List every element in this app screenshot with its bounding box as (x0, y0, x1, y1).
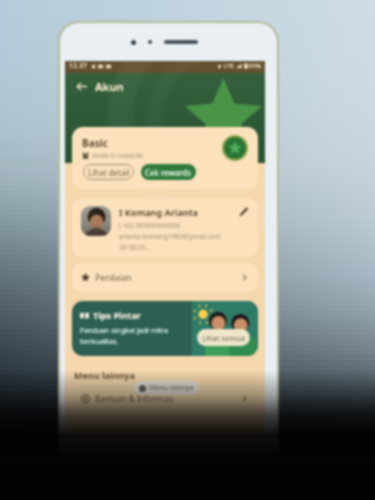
button[interactable]: Basic (72, 127, 258, 189)
staticText: Panduan singkat jadi mitra berkualitas. (80, 326, 169, 346)
staticText: I Komang Arianta (119, 206, 198, 218)
staticText: Lihat detail (88, 167, 130, 178)
button[interactable]: Bantuan & Informasi (72, 385, 258, 411)
staticText: Penilaian (95, 272, 132, 284)
button[interactable]: Tips Pintar (72, 301, 258, 356)
staticText: 12.37 (69, 61, 87, 71)
staticText: 97% (249, 62, 261, 70)
staticText: Menu lainnya (149, 383, 194, 393)
button[interactable]: Penilaian (72, 263, 258, 292)
staticText: Menu lainnya (74, 369, 135, 381)
staticText: 3618029... (119, 243, 151, 252)
staticText: Lihat semua (202, 333, 246, 343)
button[interactable]: Back (72, 77, 90, 95)
staticText: Basic (82, 136, 108, 150)
staticText: Anda 0 rewards (92, 151, 144, 161)
staticText: ( +62 085640940006 (119, 221, 181, 230)
staticText: Akun (95, 79, 124, 94)
staticText: Tips Pintar (93, 309, 141, 321)
staticText: arianta-komang1983@gmail.com (119, 232, 221, 241)
staticText: Bantuan & Informasi (95, 393, 174, 404)
button[interactable]: Lihat detail (83, 164, 134, 180)
button[interactable]: Cek rewards (141, 164, 196, 180)
staticText: Cek rewards (145, 167, 192, 178)
button[interactable]: I Komang Arianta (72, 198, 258, 257)
button[interactable]: Lihat semua (197, 329, 250, 346)
staticText: LTE (224, 62, 234, 70)
button[interactable]: Edit profile (238, 206, 250, 218)
